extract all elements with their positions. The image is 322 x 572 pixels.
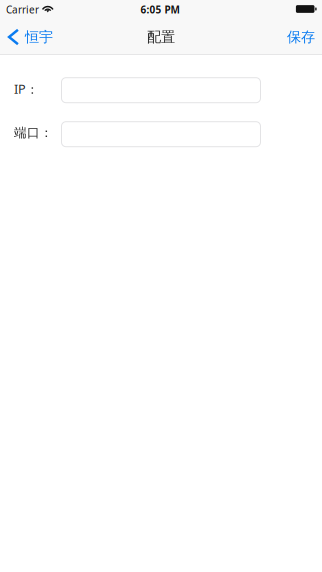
- staticText: Carrier: [6, 3, 39, 16]
- button[interactable]: Port: [61, 122, 260, 147]
- staticText: 端口：: [14, 125, 53, 141]
- button[interactable]: 保存: [273, 20, 322, 54]
- button[interactable]: 恒宇: [0, 20, 62, 54]
- staticText: IP：: [14, 80, 39, 97]
- button[interactable]: IP address: [61, 78, 260, 103]
- staticText: 6:05 PM: [140, 3, 179, 16]
- staticText: 配置: [147, 28, 175, 46]
- staticText: 保存: [287, 28, 315, 46]
- staticText: 恒宇: [25, 28, 53, 46]
